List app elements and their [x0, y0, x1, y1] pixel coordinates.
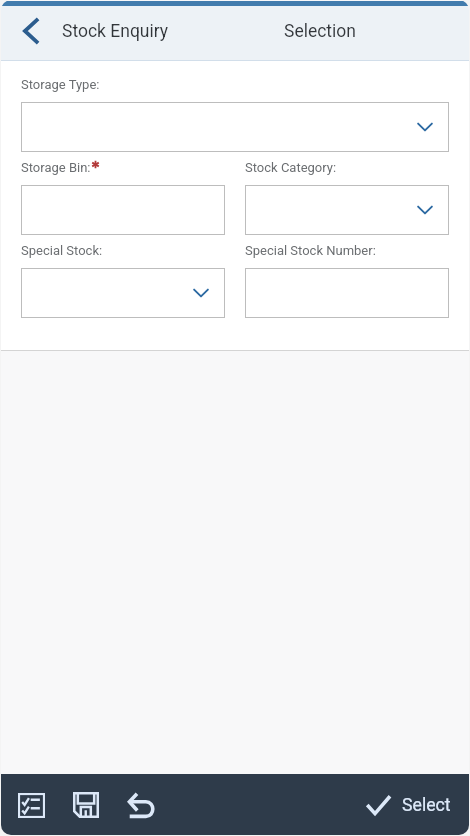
staticText: Storage Bin:: [21, 160, 91, 175]
staticText: Storage Type:: [21, 77, 100, 92]
staticText: Select: [402, 795, 451, 816]
button[interactable]: [245, 268, 449, 318]
staticText: Selection: [284, 21, 356, 42]
staticText: Stock Category:: [245, 160, 337, 175]
button[interactable]: Select: [358, 780, 469, 830]
button[interactable]: [21, 185, 225, 235]
staticText: Special Stock Number:: [245, 243, 376, 258]
staticText: Special Stock:: [21, 243, 103, 258]
button[interactable]: [21, 102, 449, 152]
button[interactable]: [245, 185, 449, 235]
button[interactable]: [21, 268, 225, 318]
button[interactable]: Undo: [122, 783, 158, 827]
button[interactable]: Checklist: [13, 783, 49, 827]
staticText: Stock Enquiry: [62, 21, 169, 42]
button[interactable]: Back: [1, 6, 62, 60]
button[interactable]: Save: [68, 783, 104, 827]
